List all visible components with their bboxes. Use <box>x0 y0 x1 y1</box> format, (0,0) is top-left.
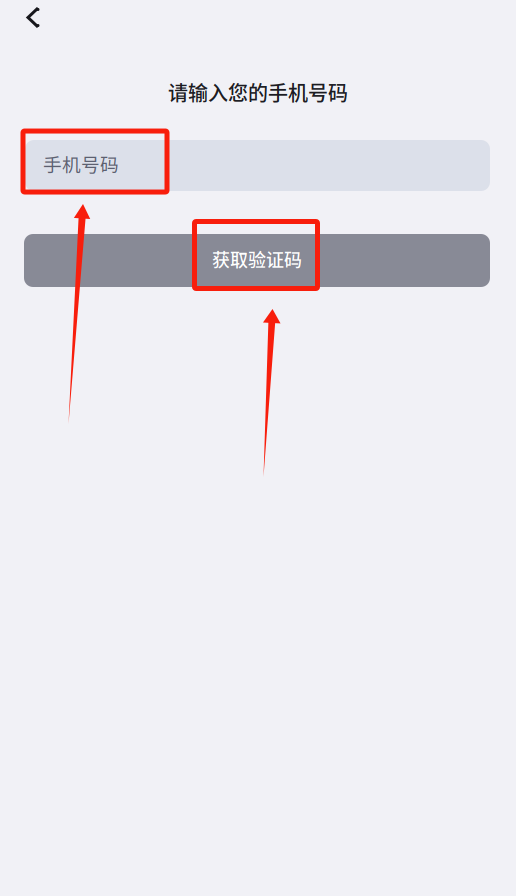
button[interactable]: Back <box>0 0 58 43</box>
staticText: 获取验证码 <box>212 246 302 272</box>
staticText: 手机号码 <box>43 150 119 177</box>
button[interactable]: 获取验证码 <box>0 191 516 287</box>
staticText: 请输入您的手机号码 <box>168 77 348 106</box>
